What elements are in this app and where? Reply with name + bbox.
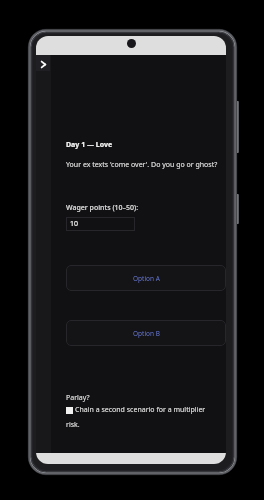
staticText: risk. <box>66 420 80 430</box>
staticText: Option B <box>133 329 160 338</box>
button[interactable]: Chain a second scenario for a multiplier <box>66 405 218 430</box>
staticText: Your ex texts 'come over'. Do you go or … <box>66 160 218 170</box>
button[interactable]: Open navigation <box>36 55 50 71</box>
staticText: Wager points (10–50): <box>66 203 139 213</box>
staticText: Option A <box>133 274 160 283</box>
staticText: Chain a second scenario for a multiplier <box>75 405 206 415</box>
staticText: Day 1 — Love <box>66 140 113 150</box>
button[interactable]: Option A <box>66 265 226 291</box>
button[interactable]: Option B <box>66 320 226 346</box>
staticText: 10 <box>70 219 79 229</box>
staticText: Parlay? <box>66 393 90 403</box>
button[interactable]: 10 <box>66 217 135 231</box>
